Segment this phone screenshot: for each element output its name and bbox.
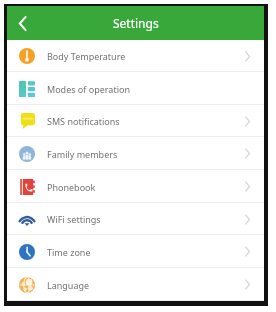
staticText: Phonebook	[47, 181, 96, 193]
button[interactable]: Family members	[7, 137, 264, 170]
staticText: Settings	[113, 15, 159, 31]
button[interactable]: Language	[7, 268, 264, 301]
staticText: Language	[47, 279, 90, 291]
button[interactable]: Body Temperature	[7, 40, 264, 72]
button[interactable]: Time zone	[7, 235, 264, 268]
staticText: Modes of operation	[47, 83, 130, 95]
button[interactable]: WiFi settings	[7, 203, 264, 235]
staticText: SMS notifications	[47, 115, 120, 127]
staticText: WiFi settings	[47, 213, 101, 225]
staticText: Time zone	[47, 246, 91, 258]
staticText: Body Temperature	[47, 50, 126, 62]
button[interactable]: Phonebook	[7, 170, 264, 203]
button[interactable]: Modes of operation	[7, 72, 264, 105]
button[interactable]: Back	[7, 8, 37, 38]
staticText: Family members	[47, 148, 118, 160]
button[interactable]: SMS notifications	[7, 105, 264, 137]
